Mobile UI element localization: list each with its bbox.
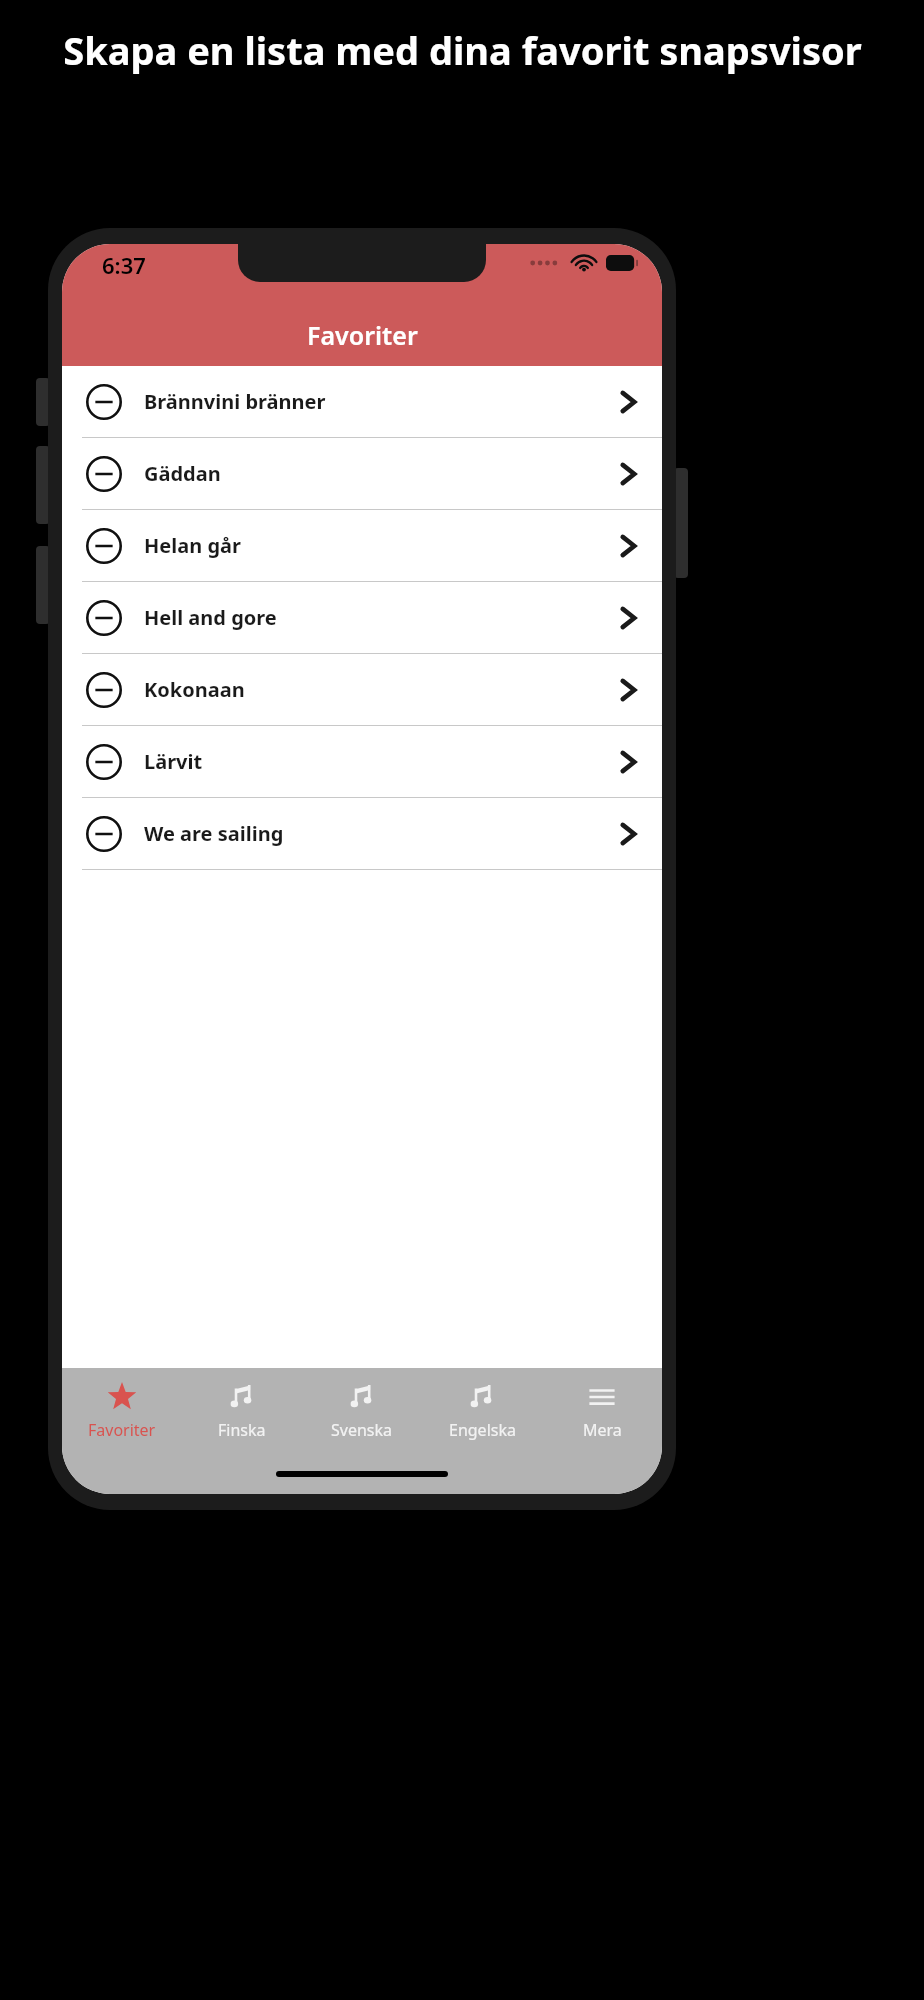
button[interactable]: Favoriter	[62, 1368, 182, 1454]
button[interactable]: Remove from favourites	[82, 812, 126, 856]
button[interactable]: Finska	[182, 1368, 302, 1454]
staticText: Finska	[218, 1419, 266, 1441]
button[interactable]: Remove from favourites	[82, 668, 126, 712]
button[interactable]: Remove from favourites	[82, 596, 126, 640]
staticText: Svenska	[331, 1419, 393, 1441]
button[interactable]: Remove from favourites	[82, 380, 126, 424]
staticText: We are sailing	[144, 820, 284, 847]
button[interactable]: Remove from favourites	[82, 452, 126, 496]
button[interactable]: Remove from favourites	[62, 654, 662, 726]
staticText: Mera	[583, 1419, 622, 1441]
staticText: Helan går	[144, 532, 241, 559]
button[interactable]: Engelska	[422, 1368, 542, 1454]
button[interactable]: Remove from favourites	[62, 798, 662, 870]
button[interactable]: Remove from favourites	[62, 438, 662, 510]
button[interactable]: Remove from favourites	[62, 510, 662, 582]
staticText: 6:37	[102, 250, 146, 280]
button[interactable]: Remove from favourites	[62, 366, 662, 438]
staticText: Brännvini bränner	[144, 388, 326, 415]
staticText: Engelska	[449, 1419, 516, 1441]
staticText: Skapa en lista med dina favorit snapsvis…	[63, 24, 862, 76]
staticText: Lärvit	[144, 748, 203, 775]
button[interactable]: Svenska	[302, 1368, 422, 1454]
button[interactable]: Remove from favourites	[82, 740, 126, 784]
button[interactable]: Mera	[542, 1368, 662, 1454]
button[interactable]: Remove from favourites	[62, 582, 662, 654]
staticText: Kokonaan	[144, 676, 245, 703]
staticText: Hell and gore	[144, 604, 277, 631]
staticText: Favoriter	[307, 318, 418, 352]
staticText: Gäddan	[144, 460, 221, 487]
button[interactable]: Remove from favourites	[82, 524, 126, 568]
button[interactable]: Remove from favourites	[62, 726, 662, 798]
staticText: Favoriter	[88, 1419, 156, 1441]
